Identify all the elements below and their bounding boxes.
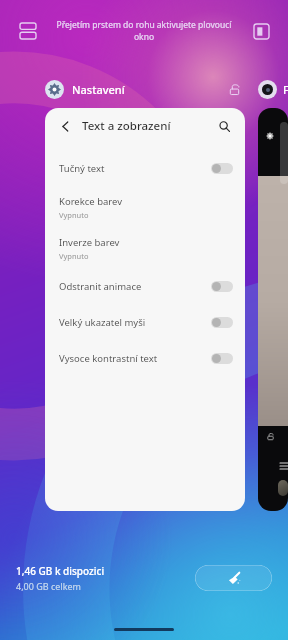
button[interactable]: Search xyxy=(213,115,235,137)
staticText: Velký ukazatel myši xyxy=(59,316,146,329)
staticText: Přejetím prstem do rohu aktivujete plovo… xyxy=(56,19,232,43)
button[interactable] xyxy=(258,108,288,511)
button[interactable]: Korekce barev xyxy=(45,190,245,225)
button[interactable]: Vysoce kontrastní text xyxy=(45,344,245,372)
button[interactable]: Tučný text xyxy=(45,154,245,182)
button[interactable]: Split screen xyxy=(10,13,46,49)
staticText: Vysoce kontrastní text xyxy=(59,352,158,365)
button[interactable]: Clear all xyxy=(195,565,272,591)
staticText: 1,46 GB k dispozici xyxy=(16,564,105,578)
button[interactable]: Inverze barev xyxy=(45,231,245,266)
button[interactable]: Lock app xyxy=(223,78,245,100)
button[interactable]: Floating window xyxy=(244,14,278,48)
button[interactable]: Odstranit animace xyxy=(45,272,245,300)
staticText: Korekce barev xyxy=(59,195,123,208)
staticText: Inverze barev xyxy=(59,236,120,249)
staticText: Vypnuto xyxy=(59,251,89,261)
staticText: Nastavení xyxy=(72,82,125,97)
staticText: F xyxy=(283,82,288,97)
button[interactable]: Velký ukazatel myši xyxy=(45,308,245,336)
staticText: Vypnuto xyxy=(59,210,89,220)
staticText: Tučný text xyxy=(59,162,105,175)
staticText: Odstranit animace xyxy=(59,280,142,293)
button[interactable]: Back xyxy=(55,116,75,136)
staticText: Text a zobrazení xyxy=(82,118,171,134)
staticText: 4,00 GB celkem xyxy=(16,580,81,592)
